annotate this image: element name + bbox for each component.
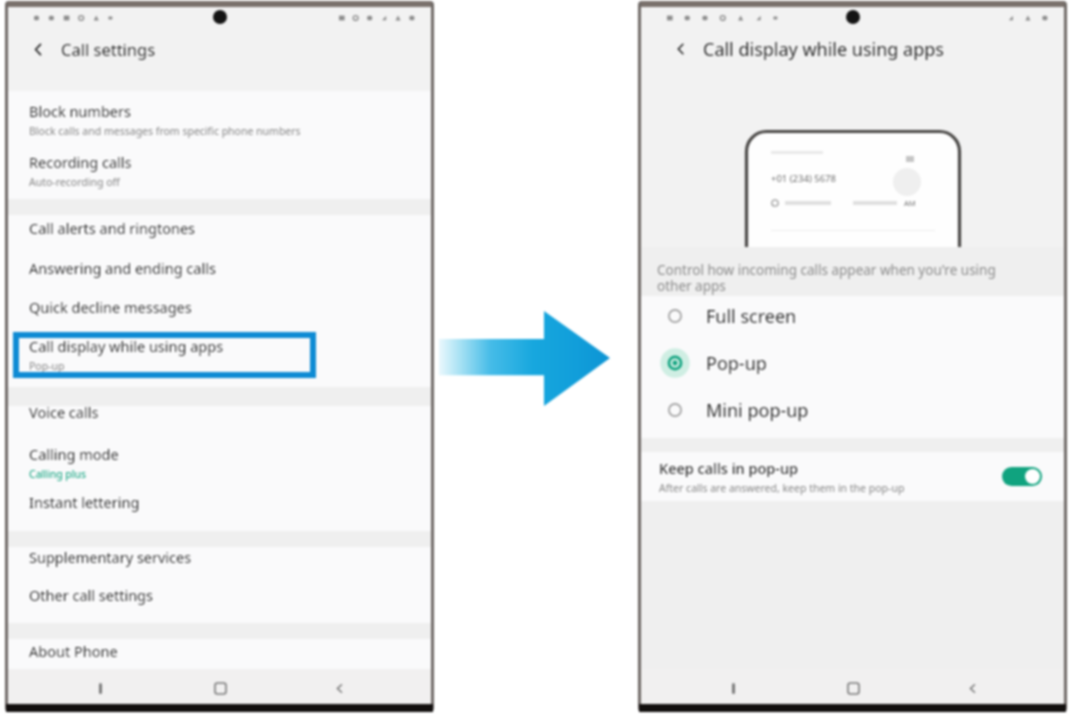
button[interactable]: Recent apps xyxy=(72,674,128,702)
staticText: After calls are answered, keep them in t… xyxy=(659,481,905,495)
staticText: Other call settings xyxy=(29,585,153,605)
button[interactable]: Keep calls in pop-up toggle xyxy=(1002,467,1042,486)
staticText: Auto-recording off xyxy=(29,175,120,189)
button[interactable]: Calling mode xyxy=(8,444,431,484)
button[interactable]: Supplementary services xyxy=(8,547,431,577)
button[interactable]: Quick decline messages xyxy=(8,297,431,327)
button[interactable]: Call alerts and ringtones xyxy=(8,218,431,248)
button[interactable]: Home xyxy=(825,674,881,702)
button[interactable]: Recording calls xyxy=(8,152,431,192)
button[interactable]: Keep calls in pop-up xyxy=(641,452,1064,501)
staticText: Full screen xyxy=(706,304,797,329)
button[interactable]: Recent apps xyxy=(705,674,761,702)
staticText: Calling mode xyxy=(29,444,119,464)
button[interactable]: Block numbers xyxy=(8,101,431,141)
staticText: Supplementary services xyxy=(29,547,192,567)
other: Navigate up xyxy=(30,41,47,58)
button[interactable]: Mini pop-up xyxy=(641,387,1064,433)
staticText: Block calls and messages from specific p… xyxy=(29,124,301,138)
button[interactable]: Back xyxy=(944,674,1000,702)
staticText: AM xyxy=(904,198,916,208)
button[interactable]: About Phone xyxy=(8,641,431,671)
staticText: Calling plus xyxy=(29,467,87,481)
button[interactable]: Home xyxy=(192,674,248,702)
staticText: Pop-up xyxy=(29,359,65,373)
staticText: Voice calls xyxy=(29,402,99,422)
staticText: Pop-up xyxy=(706,351,767,376)
staticText: Mini pop-up xyxy=(706,398,809,423)
staticText: +01 (234) 5678 xyxy=(771,172,836,185)
button[interactable]: Other call settings xyxy=(8,585,431,615)
button[interactable]: Back xyxy=(311,674,367,702)
staticText: Call display while using apps xyxy=(29,336,224,356)
button[interactable]: Pop-up xyxy=(641,340,1064,386)
staticText: Keep calls in pop-up xyxy=(659,458,798,478)
other: Navigate up xyxy=(673,41,689,57)
staticText: Call display while using apps xyxy=(703,37,944,62)
staticText: Instant lettering xyxy=(29,492,140,512)
button[interactable]: Answering and ending calls xyxy=(8,258,431,288)
staticText: Control how incoming calls appear when y… xyxy=(657,261,1015,295)
staticText: Answering and ending calls xyxy=(29,258,216,278)
staticText: Quick decline messages xyxy=(29,297,192,317)
staticText: Block numbers xyxy=(29,101,131,121)
button[interactable]: Instant lettering xyxy=(8,492,431,522)
button[interactable]: Voice calls xyxy=(8,402,431,432)
staticText: Recording calls xyxy=(29,152,132,172)
button[interactable]: Call display while using apps xyxy=(8,336,431,376)
staticText: Call settings xyxy=(61,38,156,60)
button[interactable]: Full screen xyxy=(641,293,1064,339)
staticText: About Phone xyxy=(29,641,118,661)
staticText: Call alerts and ringtones xyxy=(29,218,196,238)
